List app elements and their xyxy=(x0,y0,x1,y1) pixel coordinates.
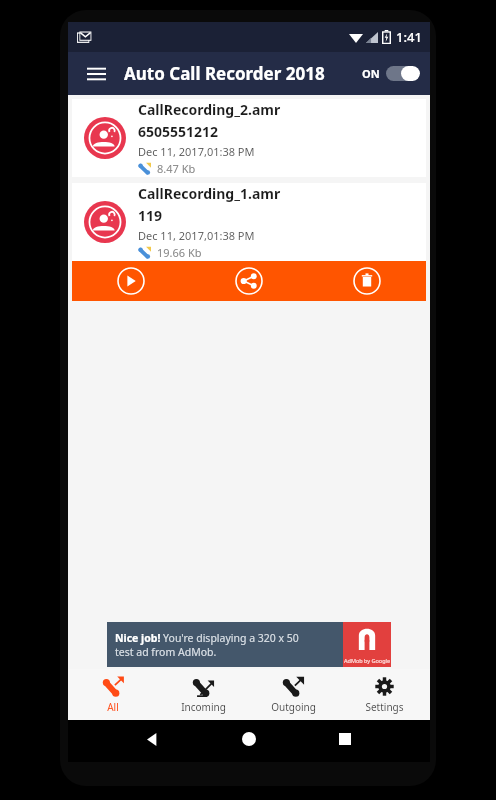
staticText: CallRecording_2.amr xyxy=(138,100,281,119)
button[interactable]: Back xyxy=(142,728,164,750)
staticText: CallRecording_1.amr xyxy=(138,184,281,203)
button[interactable]: Recording toggle ON xyxy=(362,66,420,81)
staticText: All xyxy=(107,700,119,714)
staticText: Nice job! You're displaying a 320 x 50 xyxy=(115,631,299,645)
button[interactable]: Open navigation menu xyxy=(80,58,112,90)
button[interactable]: Incoming xyxy=(158,669,248,720)
staticText: Dec 11, 2017,01:38 PM xyxy=(138,144,255,159)
button[interactable]: Settings xyxy=(339,669,430,720)
staticText: 119 xyxy=(138,206,163,225)
button[interactable]: CallRecording_1.amr xyxy=(72,183,426,301)
staticText: 1:41 xyxy=(396,28,422,46)
button[interactable]: Advertisement xyxy=(107,622,391,667)
button[interactable]: Recent apps xyxy=(334,728,356,750)
staticText: Settings xyxy=(365,700,404,714)
staticText: Incoming xyxy=(181,700,226,714)
staticText: ON xyxy=(362,66,380,81)
button[interactable]: Share recording xyxy=(190,261,308,301)
button[interactable]: All xyxy=(68,669,158,720)
staticText: Dec 11, 2017,01:38 PM xyxy=(138,228,255,243)
staticText: 6505551212 xyxy=(138,122,219,141)
staticText: 19.66 Kb xyxy=(157,245,202,260)
staticText: test ad from AdMob. xyxy=(115,645,217,659)
staticText: Auto Call Recorder 2018 xyxy=(124,62,325,85)
staticText: AdMob by Google xyxy=(344,657,391,664)
button[interactable]: Play recording xyxy=(72,261,190,301)
button[interactable]: Delete recording xyxy=(308,261,426,301)
staticText: 8.47 Kb xyxy=(157,161,196,176)
button[interactable]: Outgoing xyxy=(248,669,339,720)
button[interactable]: Home xyxy=(238,728,260,750)
staticText: Outgoing xyxy=(271,700,316,714)
button[interactable]: CallRecording_2.amr xyxy=(72,99,426,177)
